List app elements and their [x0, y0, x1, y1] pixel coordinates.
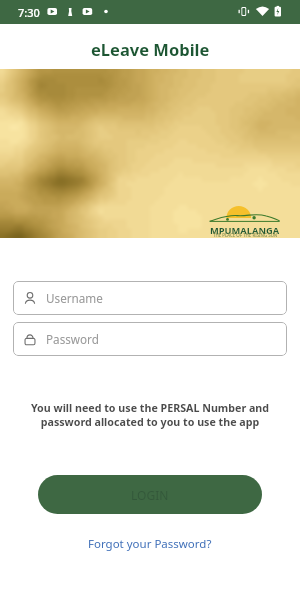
- staticText: You will need to use the PERSAL Number a…: [26, 401, 274, 429]
- staticText: Username: [46, 290, 103, 306]
- staticText: eLeave Mobile: [91, 38, 210, 60]
- staticText: Password: [46, 331, 99, 347]
- staticText: LOGIN: [131, 487, 169, 503]
- button[interactable]: Username: [13, 281, 287, 315]
- button[interactable]: Password: [13, 322, 287, 356]
- staticText: THE PLACE OF THE RISING SUN: [213, 232, 278, 238]
- button[interactable]: Forgot your Password?: [82, 534, 218, 554]
- button[interactable]: LOGIN: [38, 475, 262, 514]
- staticText: MPUMALANGA: [210, 224, 280, 237]
- staticText: 7:30: [18, 5, 40, 20]
